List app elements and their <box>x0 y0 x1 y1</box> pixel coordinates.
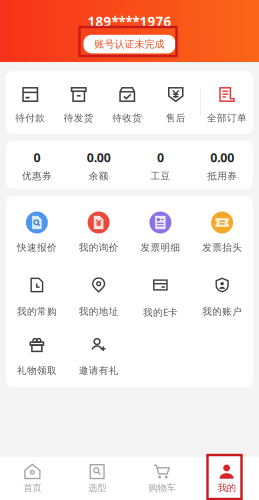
staticText: 待收货 <box>112 112 142 124</box>
button[interactable]: 待付款 <box>6 71 54 134</box>
staticText: 首页 <box>23 482 41 494</box>
button[interactable]: 0.00 <box>68 141 130 189</box>
staticText: 待发货 <box>64 112 94 124</box>
staticText: 账号认证未完成 <box>94 38 164 50</box>
button[interactable]: 账号认证未完成 <box>83 35 175 53</box>
button[interactable]: 发票抬头 <box>191 198 253 260</box>
button[interactable]: 待发货 <box>54 71 103 134</box>
staticText: 发票明细 <box>140 241 180 254</box>
button[interactable]: 礼物领取 <box>6 322 68 384</box>
button[interactable]: 0 <box>129 141 191 189</box>
staticText: 余额 <box>89 170 109 182</box>
staticText: 我的询价 <box>79 241 119 254</box>
staticText: 我的E卡 <box>143 305 178 319</box>
staticText: 优惠券 <box>22 170 52 182</box>
staticText: 发票抬头 <box>202 241 242 254</box>
staticText: 待付款 <box>15 112 45 124</box>
button[interactable]: 我的 <box>194 458 259 499</box>
button[interactable]: 我的地址 <box>68 260 130 322</box>
button[interactable]: 0 <box>6 141 68 189</box>
staticText: 我的常购 <box>17 305 57 318</box>
staticText: 0 <box>157 149 164 166</box>
staticText: 抵用券 <box>207 170 237 182</box>
staticText: 礼物领取 <box>17 364 57 377</box>
button[interactable]: 0.00 <box>191 141 253 189</box>
button[interactable]: 选型 <box>65 458 130 499</box>
button[interactable]: 待收货 <box>103 71 151 134</box>
staticText: 189****1976 <box>87 13 171 31</box>
button[interactable]: 发票明细 <box>129 198 191 260</box>
staticText: 我的地址 <box>79 305 119 318</box>
staticText: 售后 <box>166 112 186 124</box>
button[interactable]: 我的E卡 <box>129 260 191 322</box>
staticText: 我的账户 <box>202 305 242 318</box>
button[interactable]: 全部订单 <box>201 71 253 134</box>
staticText: 0.00 <box>87 149 111 166</box>
staticText: 全部订单 <box>207 112 247 124</box>
staticText: 购物车 <box>148 482 175 494</box>
button[interactable]: 邀请有礼 <box>68 322 130 384</box>
staticText: 我的 <box>218 482 236 494</box>
button[interactable]: 我的常购 <box>6 260 68 322</box>
staticText: 邀请有礼 <box>79 364 119 377</box>
button[interactable]: 首页 <box>0 458 65 499</box>
button[interactable]: 购物车 <box>129 458 194 499</box>
button[interactable]: 我的询价 <box>68 198 130 260</box>
staticText: 工豆 <box>150 170 170 182</box>
button[interactable]: 我的账户 <box>191 260 253 322</box>
staticText: 0.00 <box>210 149 234 166</box>
staticText: 选型 <box>88 482 106 494</box>
button[interactable]: 快速报价 <box>6 198 68 260</box>
staticText: 快速报价 <box>17 241 57 254</box>
button[interactable]: 售后 <box>151 71 200 134</box>
staticText: 0 <box>33 149 40 166</box>
